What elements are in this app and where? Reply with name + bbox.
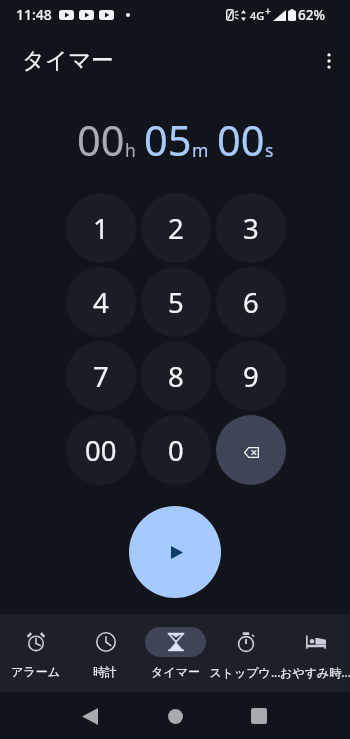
staticText: s — [265, 138, 274, 162]
button[interactable]: 6 — [216, 267, 286, 337]
button[interactable]: 5 — [141, 267, 211, 337]
staticText: 7 — [93, 358, 109, 395]
button[interactable]: Back — [73, 699, 107, 733]
button[interactable]: おやすみ時... — [280, 614, 350, 680]
button[interactable]: More options — [309, 43, 349, 79]
staticText: タイマー — [22, 46, 114, 74]
staticText: h — [125, 138, 136, 162]
staticText: m — [192, 138, 209, 162]
staticText: タイマー — [151, 664, 200, 679]
staticText: 3 — [243, 210, 259, 247]
button[interactable]: アラーム — [0, 614, 70, 679]
staticText: 2 — [168, 210, 184, 247]
button[interactable]: 9 — [216, 341, 286, 411]
staticText: 5 — [168, 284, 184, 321]
button[interactable]: 0 — [141, 415, 211, 485]
button[interactable]: Recents — [242, 699, 276, 733]
button[interactable]: Backspace — [216, 415, 286, 485]
staticText: 00 — [85, 432, 117, 469]
staticText: 11:48 — [16, 5, 52, 24]
staticText: 1 — [93, 210, 109, 247]
staticText: 9 — [243, 358, 259, 395]
staticText: 0 — [168, 432, 184, 469]
button[interactable]: 1 — [66, 193, 136, 263]
staticText: 05 — [144, 112, 192, 158]
staticText: 00 — [217, 112, 265, 158]
staticText: 6 — [243, 284, 259, 321]
staticText: 時計 — [93, 664, 117, 679]
staticText: 62% — [298, 6, 325, 24]
staticText: ストップウ... — [209, 664, 281, 680]
button[interactable]: 8 — [141, 341, 211, 411]
staticText: アラーム — [11, 664, 60, 679]
button[interactable]: Start timer — [129, 506, 221, 598]
staticText: + — [265, 4, 271, 18]
staticText: おやすみ時... — [280, 664, 350, 680]
staticText: 00 — [77, 112, 125, 158]
button[interactable]: Home — [158, 699, 192, 733]
button[interactable]: 2 — [141, 193, 211, 263]
staticText: 8 — [168, 358, 184, 395]
button[interactable]: 7 — [66, 341, 136, 411]
button[interactable]: タイマー — [140, 614, 210, 679]
button[interactable]: 00 — [66, 415, 136, 485]
button[interactable]: ストップウ... — [210, 614, 280, 680]
button[interactable]: 3 — [216, 193, 286, 263]
button[interactable]: 4 — [66, 267, 136, 337]
staticText: 4G — [250, 8, 265, 23]
staticText: 4 — [93, 284, 109, 321]
button[interactable]: 時計 — [70, 614, 140, 679]
